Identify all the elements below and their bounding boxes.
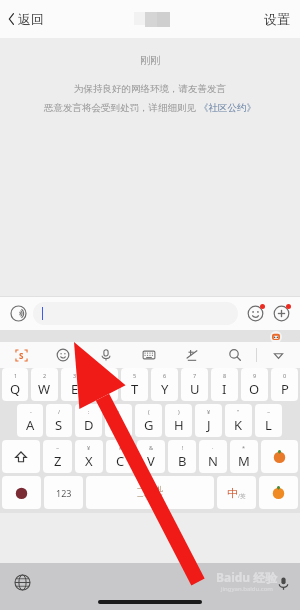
button[interactable]: Emoji keyboard xyxy=(42,342,84,368)
button[interactable]: 3 xyxy=(61,368,88,401)
button[interactable]: ; xyxy=(105,404,132,437)
staticText: jingyan.baidu.com xyxy=(221,585,273,593)
button[interactable]: Voice input xyxy=(272,572,294,594)
staticText: S xyxy=(55,416,63,434)
staticText: E xyxy=(71,380,79,398)
staticText: S xyxy=(19,350,24,361)
button[interactable]: Sogou input settings xyxy=(0,342,42,368)
button[interactable]: Symbols xyxy=(2,476,41,509)
button[interactable]: - xyxy=(17,404,43,437)
button[interactable]: Change language xyxy=(10,570,34,594)
button[interactable] xyxy=(33,302,238,325)
staticText: R xyxy=(100,380,109,398)
button[interactable]: Switch Chinese English xyxy=(217,476,256,509)
button[interactable]: ( xyxy=(135,404,162,437)
staticText: : xyxy=(88,408,90,415)
button[interactable]: ¥ xyxy=(195,404,222,437)
button[interactable]: 123 xyxy=(44,476,83,509)
staticText: " xyxy=(237,408,240,415)
button[interactable]: 9 xyxy=(241,368,268,401)
staticText: N xyxy=(208,452,218,470)
staticText: 为保持良好的网络环境，请友善发言 xyxy=(74,83,226,95)
staticText: & xyxy=(149,444,154,451)
staticText: K xyxy=(234,416,243,434)
button[interactable]: Hide keyboard xyxy=(257,342,300,368)
button[interactable]: Handwriting input xyxy=(170,342,213,368)
staticText: 8 xyxy=(223,372,227,379)
staticText: ¥ xyxy=(87,444,91,451)
staticText: Z xyxy=(54,452,62,470)
staticText: 7 xyxy=(193,372,197,379)
staticText: P xyxy=(281,380,289,398)
button[interactable]: 设置 xyxy=(254,3,300,35)
staticText: Baidu 经验 xyxy=(216,569,278,585)
staticText: /英 xyxy=(238,492,246,500)
staticText: 中 xyxy=(227,486,238,500)
button[interactable]: 7 xyxy=(181,368,208,401)
staticText: F xyxy=(115,416,122,434)
button[interactable]: ¥ xyxy=(75,440,103,473)
button[interactable]: 返回 xyxy=(0,5,52,33)
staticText: - xyxy=(30,408,32,415)
button[interactable]: Assistant xyxy=(270,331,282,343)
button[interactable]: # xyxy=(106,440,134,473)
staticText: C xyxy=(116,452,125,470)
staticText: 3 xyxy=(73,372,77,379)
staticText: 0 xyxy=(283,372,287,379)
staticText: H xyxy=(174,416,184,434)
staticText: Y xyxy=(161,380,169,398)
button[interactable]: Backspace xyxy=(261,440,298,473)
button[interactable]: ~ xyxy=(255,404,282,437)
button[interactable]: Emoji xyxy=(242,300,268,326)
staticText: Q xyxy=(10,380,21,398)
staticText: V xyxy=(147,452,155,470)
staticText: ) xyxy=(178,408,180,415)
staticText: 1 xyxy=(14,372,18,379)
button[interactable]: Search xyxy=(213,342,256,368)
button[interactable]: 8 xyxy=(211,368,238,401)
button[interactable]: Voice keyboard xyxy=(84,342,127,368)
button[interactable]: Space xyxy=(86,476,214,509)
button[interactable]: 6 xyxy=(151,368,178,401)
staticText: · xyxy=(212,444,214,451)
button[interactable]: : xyxy=(75,404,102,437)
button[interactable]: More options xyxy=(268,300,294,326)
button[interactable]: & xyxy=(137,440,165,473)
button[interactable]: Enter xyxy=(259,476,298,509)
staticText: 2 xyxy=(43,372,47,379)
staticText: 恶意发言将会受到处罚，详细细则见 xyxy=(44,101,199,114)
staticText: 一岁一礼 xyxy=(137,485,163,493)
staticText: ; xyxy=(118,408,120,415)
button[interactable]: Keyboard layout xyxy=(127,342,170,368)
button[interactable]: ! xyxy=(168,440,196,473)
button[interactable]: 5 xyxy=(121,368,148,401)
staticText: A xyxy=(26,416,35,434)
staticText: O xyxy=(249,380,260,398)
staticText: B xyxy=(178,452,187,470)
button[interactable]: 2 xyxy=(31,368,58,401)
button[interactable]: ~ xyxy=(43,440,72,473)
button[interactable]: 1 xyxy=(2,368,28,401)
button[interactable]: ) xyxy=(165,404,192,437)
button[interactable]: * xyxy=(230,440,258,473)
staticText: 设置 xyxy=(264,11,290,27)
staticText: I xyxy=(222,380,227,398)
button[interactable]: 《社区公约》 xyxy=(199,102,256,114)
button[interactable]: Voice input xyxy=(6,301,30,325)
staticText: 9 xyxy=(253,372,257,379)
button[interactable]: 4 xyxy=(91,368,118,401)
staticText: * xyxy=(242,444,246,451)
staticText: J xyxy=(207,416,211,434)
button[interactable]: 0 xyxy=(271,368,298,401)
staticText: 返回 xyxy=(18,11,44,27)
staticText: / xyxy=(58,408,61,415)
staticText: ¥ xyxy=(207,408,211,415)
button[interactable]: / xyxy=(46,404,72,437)
button[interactable]: Shift xyxy=(2,440,40,473)
staticText: L xyxy=(265,416,272,434)
button[interactable]: " xyxy=(225,404,252,437)
staticText: 123 xyxy=(56,487,72,499)
staticText: ~ xyxy=(267,408,271,415)
button[interactable]: · xyxy=(199,440,227,473)
